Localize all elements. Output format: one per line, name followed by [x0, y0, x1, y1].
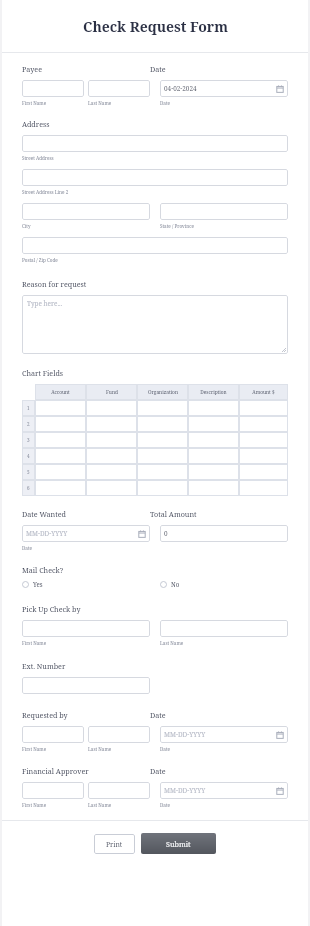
button[interactable]: MM-DD-YYYY [22, 525, 150, 542]
button[interactable]: Open calendar [276, 85, 284, 93]
staticText: Date [22, 545, 33, 551]
staticText: Print [106, 840, 123, 849]
button[interactable] [239, 432, 288, 448]
staticText: Date [150, 710, 166, 720]
button[interactable] [188, 448, 239, 464]
button[interactable]: Type here... [22, 295, 288, 354]
staticText: MM-DD-YYYY [164, 786, 206, 795]
button[interactable] [188, 432, 239, 448]
button[interactable] [22, 80, 84, 97]
staticText: Date Wanted [22, 509, 67, 519]
button[interactable] [22, 237, 288, 254]
button[interactable]: 04-02-2024 [160, 80, 288, 97]
staticText: Amount $ [252, 389, 275, 396]
staticText: City [22, 223, 31, 229]
button[interactable] [88, 782, 150, 799]
button[interactable] [188, 400, 239, 416]
button[interactable] [137, 448, 188, 464]
staticText: Type here... [27, 299, 63, 308]
staticText: 1 [27, 405, 30, 411]
button[interactable] [86, 416, 137, 432]
staticText: Date [150, 766, 166, 776]
staticText: MM-DD-YYYY [26, 529, 68, 538]
button[interactable]: No [160, 580, 288, 588]
staticText: Check Request Form [83, 17, 228, 36]
staticText: Postal / Zip Code [22, 257, 58, 263]
button[interactable] [188, 464, 239, 480]
staticText: 4 [27, 453, 30, 459]
button[interactable]: Open calendar [138, 530, 146, 538]
staticText: Last Name [88, 100, 112, 106]
button[interactable] [35, 464, 86, 480]
staticText: 2 [27, 421, 30, 427]
staticText: Total Amount [150, 509, 197, 519]
button[interactable] [239, 416, 288, 432]
staticText: Fund [106, 389, 118, 396]
staticText: Description [200, 389, 227, 396]
button[interactable] [88, 726, 150, 743]
button[interactable] [239, 400, 288, 416]
staticText: Payee [22, 64, 42, 74]
staticText: No [171, 580, 180, 588]
button[interactable] [22, 782, 84, 799]
button[interactable]: Open calendar [276, 787, 284, 795]
button[interactable] [137, 464, 188, 480]
button[interactable] [35, 448, 86, 464]
staticText: Last Name [88, 802, 112, 808]
button[interactable] [160, 203, 288, 220]
button[interactable] [239, 480, 288, 496]
staticText: Reason for request [22, 279, 87, 289]
button[interactable] [137, 416, 188, 432]
staticText: Ext. Number [22, 661, 66, 671]
staticText: Street Address Line 2 [22, 189, 69, 195]
button[interactable] [22, 169, 288, 186]
button[interactable] [22, 135, 288, 152]
staticText: Yes [33, 580, 43, 588]
staticText: First Name [22, 746, 47, 752]
staticText: Mail Check? [22, 565, 64, 575]
button[interactable] [86, 464, 137, 480]
button[interactable] [22, 203, 150, 220]
button[interactable] [88, 80, 150, 97]
staticText: Organization [148, 389, 178, 396]
button[interactable] [22, 620, 150, 637]
staticText: Date [150, 64, 166, 74]
button[interactable] [86, 400, 137, 416]
button[interactable] [86, 480, 137, 496]
button[interactable] [22, 726, 84, 743]
staticText: Street Address [22, 155, 54, 161]
staticText: Date [160, 100, 171, 106]
button[interactable]: Submit [141, 833, 216, 854]
button[interactable]: Yes [22, 580, 150, 588]
button[interactable] [160, 620, 288, 637]
button[interactable] [86, 432, 137, 448]
staticText: State / Province [160, 223, 194, 229]
staticText: 04-02-2024 [164, 84, 197, 93]
staticText: Date [160, 746, 171, 752]
button[interactable] [239, 464, 288, 480]
button[interactable] [188, 480, 239, 496]
staticText: 5 [27, 469, 30, 475]
button[interactable] [35, 480, 86, 496]
button[interactable]: Print [94, 834, 135, 854]
button[interactable] [35, 400, 86, 416]
button[interactable] [137, 480, 188, 496]
button[interactable]: MM-DD-YYYY [160, 726, 288, 743]
staticText: 0 [164, 529, 168, 538]
button[interactable] [35, 432, 86, 448]
staticText: 6 [27, 485, 30, 491]
button[interactable] [137, 432, 188, 448]
button[interactable]: 0 [160, 525, 288, 542]
button[interactable] [35, 416, 86, 432]
staticText: 3 [27, 437, 30, 443]
button[interactable] [86, 448, 137, 464]
button[interactable] [22, 677, 150, 694]
button[interactable] [239, 448, 288, 464]
button[interactable] [188, 416, 239, 432]
button[interactable]: Open calendar [276, 731, 284, 739]
staticText: Last Name [88, 746, 112, 752]
button[interactable] [137, 400, 188, 416]
staticText: Account [51, 389, 70, 396]
button[interactable]: MM-DD-YYYY [160, 782, 288, 799]
staticText: Pick Up Check by [22, 604, 81, 614]
